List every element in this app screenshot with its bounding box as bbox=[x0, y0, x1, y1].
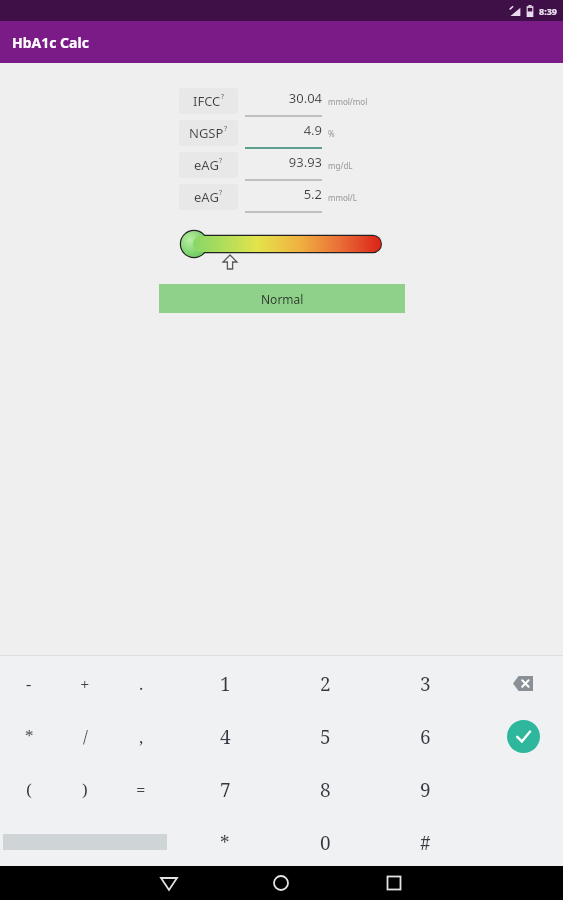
button[interactable]: 6 bbox=[397, 710, 453, 763]
button[interactable]: 3 bbox=[397, 657, 453, 710]
staticText: Normal bbox=[261, 291, 304, 307]
staticText: % bbox=[328, 128, 335, 139]
button[interactable]: Enter bbox=[495, 710, 551, 763]
staticText: NGSP bbox=[189, 124, 224, 142]
button[interactable]: * bbox=[197, 816, 253, 869]
button[interactable]: NGSP bbox=[179, 120, 238, 146]
button[interactable]: 8 bbox=[297, 763, 353, 816]
staticText: * bbox=[25, 725, 34, 748]
button[interactable]: 5.2 bbox=[245, 181, 322, 213]
staticText: . bbox=[139, 672, 144, 695]
staticText: , bbox=[139, 725, 144, 748]
other: HbA1c level indicator bbox=[0, 231, 563, 269]
staticText: mmol/L bbox=[328, 192, 358, 203]
staticText: 4 bbox=[220, 724, 231, 750]
staticText: 2 bbox=[320, 671, 331, 697]
button[interactable]: eAG bbox=[179, 152, 238, 178]
button[interactable]: , bbox=[113, 710, 169, 763]
button[interactable]: ( bbox=[1, 763, 57, 816]
button[interactable]: = bbox=[113, 763, 169, 816]
staticText: 6 bbox=[420, 724, 431, 750]
button[interactable]: 30.04 bbox=[245, 85, 322, 117]
button[interactable]: 2 bbox=[297, 657, 353, 710]
staticText: ? bbox=[221, 92, 225, 102]
button[interactable]: IFCC bbox=[179, 88, 238, 114]
staticText: IFCC bbox=[193, 92, 221, 110]
button[interactable]: 9 bbox=[397, 763, 453, 816]
staticText: 30.04 bbox=[245, 89, 322, 107]
staticText: 5.2 bbox=[245, 185, 322, 203]
button[interactable]: + bbox=[57, 657, 113, 710]
button[interactable]: ) bbox=[57, 763, 113, 816]
staticText: 3 bbox=[420, 671, 431, 697]
button[interactable]: 93.93 bbox=[245, 149, 322, 181]
button[interactable]: Normal bbox=[159, 284, 405, 313]
staticText: 0 bbox=[320, 830, 331, 856]
staticText: eAG bbox=[194, 188, 219, 206]
staticText: # bbox=[420, 830, 431, 856]
staticText: ) bbox=[82, 778, 88, 801]
staticText: = bbox=[136, 778, 146, 801]
staticText: 8 bbox=[320, 777, 331, 803]
staticText: 5 bbox=[320, 724, 331, 750]
button[interactable]: 4 bbox=[197, 710, 253, 763]
staticText: / bbox=[83, 725, 88, 748]
button[interactable]: 5 bbox=[297, 710, 353, 763]
button[interactable]: eAG bbox=[179, 184, 238, 210]
button[interactable]: - bbox=[1, 657, 57, 710]
staticText: + bbox=[80, 672, 90, 695]
staticText: HbA1c Calc bbox=[12, 33, 89, 52]
staticText: - bbox=[26, 672, 32, 695]
staticText: 8:39 bbox=[539, 5, 557, 17]
other: Navigation bar bbox=[0, 866, 563, 900]
staticText: * bbox=[220, 830, 230, 856]
staticText: eAG bbox=[194, 156, 219, 174]
staticText: mg/dL bbox=[328, 160, 353, 171]
button[interactable]: . bbox=[113, 657, 169, 710]
button[interactable]: / bbox=[57, 710, 113, 763]
staticText: ( bbox=[26, 778, 32, 801]
button[interactable]: # bbox=[397, 816, 453, 869]
button[interactable]: Backspace bbox=[495, 657, 551, 710]
button[interactable]: * bbox=[1, 710, 57, 763]
staticText: 1 bbox=[220, 671, 231, 697]
staticText: mmol/mol bbox=[328, 96, 368, 107]
button[interactable]: 1 bbox=[197, 657, 253, 710]
button[interactable]: 4.9 bbox=[245, 117, 322, 149]
button[interactable]: 0 bbox=[297, 816, 353, 869]
staticText: ? bbox=[219, 156, 223, 166]
staticText: ? bbox=[224, 124, 228, 134]
staticText: 93.93 bbox=[245, 153, 322, 171]
staticText: 4.9 bbox=[245, 121, 322, 139]
staticText: 9 bbox=[420, 777, 431, 803]
staticText: ? bbox=[219, 188, 223, 198]
staticText: 7 bbox=[220, 777, 231, 803]
button[interactable]: 7 bbox=[197, 763, 253, 816]
